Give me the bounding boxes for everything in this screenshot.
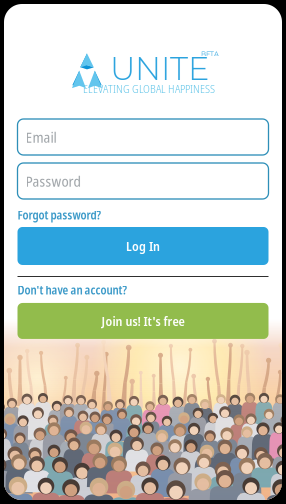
staticText: Log In [126, 237, 160, 255]
staticText: BETA [201, 50, 219, 58]
button[interactable]: Join us! It's free [4, 299, 282, 339]
staticText: ELEVATING GLOBAL HAPPINESS [83, 81, 215, 96]
staticText: Email [25, 127, 56, 147]
button[interactable]: Don't have an account? [4, 277, 282, 299]
button[interactable]: Forgot password? [4, 199, 282, 225]
staticText: Join us! It's free [101, 312, 184, 330]
staticText: UNITE [110, 49, 209, 88]
button[interactable]: Log In [4, 225, 282, 265]
staticText: Forgot password? [17, 207, 100, 223]
staticText: Don't have an account? [17, 282, 126, 298]
staticText: Password [25, 171, 80, 191]
